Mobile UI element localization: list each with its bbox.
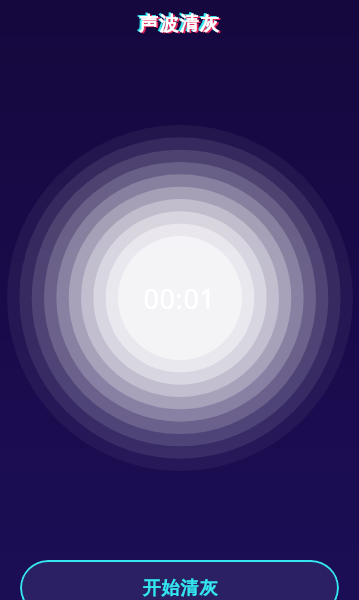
staticText: 开始清灰 xyxy=(142,577,218,600)
button[interactable]: 开始清灰 xyxy=(20,560,339,600)
staticText: 声波清灰 xyxy=(139,12,220,36)
staticText: 00:01 xyxy=(143,280,216,317)
staticText: 声波清灰 xyxy=(137,11,218,35)
staticText: 声波清灰 xyxy=(141,13,222,37)
